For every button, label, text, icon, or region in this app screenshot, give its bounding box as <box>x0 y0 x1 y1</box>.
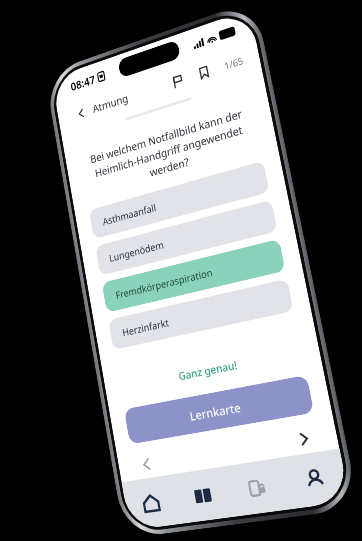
button[interactable]: Back <box>70 101 91 125</box>
button[interactable]: Fremdkörperaspiration <box>101 239 286 313</box>
staticText: 1/65 <box>223 54 244 72</box>
button[interactable]: Bookmark <box>191 58 217 87</box>
staticText: Atmung <box>92 91 129 116</box>
staticText: Fremdkörperaspiration <box>115 265 214 302</box>
staticText: 08:47 <box>69 71 97 94</box>
button[interactable]: Lernkarte <box>124 375 314 444</box>
button[interactable]: Previous question <box>133 450 160 479</box>
button[interactable]: Next question <box>289 423 320 454</box>
button[interactable]: Profile <box>281 448 350 509</box>
staticText: Asthmaanfall <box>102 201 157 228</box>
button[interactable]: Herzinfarkt <box>108 278 294 350</box>
staticText: Bei welchem Notfallbild kann der Heimlic… <box>84 104 255 197</box>
button[interactable]: Report question <box>165 67 190 95</box>
button[interactable]: Home <box>121 474 181 531</box>
staticText: Lungenödem <box>108 238 165 265</box>
button[interactable]: Cards (locked) <box>224 458 291 517</box>
staticText: Ganz genau! <box>104 340 321 398</box>
button[interactable]: Learn <box>172 466 234 524</box>
button[interactable]: Lungenödem <box>95 199 278 276</box>
button[interactable]: Asthmaanfall <box>89 161 270 239</box>
staticText: Herzinfarkt <box>121 316 171 339</box>
staticText: Lernkarte <box>188 399 243 424</box>
